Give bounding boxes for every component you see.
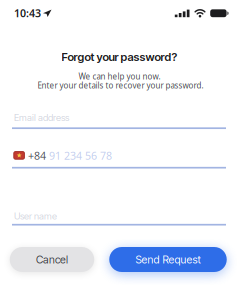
button[interactable]: Cancel xyxy=(10,247,94,272)
textField[interactable] xyxy=(12,202,226,232)
staticText xyxy=(12,105,18,135)
staticText: +84 xyxy=(28,148,46,163)
staticText: 10:43 xyxy=(14,6,41,20)
button[interactable]: Send Request xyxy=(109,247,227,272)
textField[interactable] xyxy=(12,143,226,173)
staticText: Cancel xyxy=(36,253,68,266)
staticText: User name xyxy=(14,210,57,222)
staticText: Enter your details to recover your passw… xyxy=(37,80,203,91)
staticText: Forgot your password? xyxy=(61,50,177,64)
staticText xyxy=(12,143,18,173)
staticText: We can help you now. xyxy=(78,71,160,82)
staticText: Send Request xyxy=(135,253,200,266)
staticText: Email address xyxy=(14,112,69,123)
staticText: 91 234 56 78 xyxy=(46,148,112,163)
textField[interactable] xyxy=(12,105,226,135)
staticText xyxy=(12,202,18,232)
